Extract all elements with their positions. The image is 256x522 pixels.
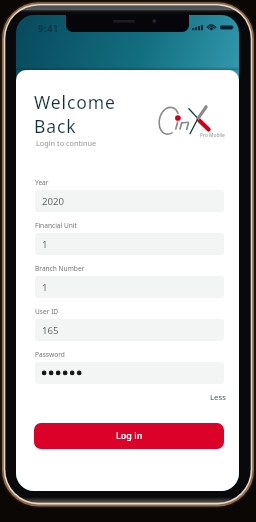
staticText: 1 bbox=[42, 238, 48, 251]
staticText: Welcome Back bbox=[34, 90, 116, 138]
button[interactable]: Password bbox=[35, 362, 224, 384]
button[interactable]: Log in bbox=[34, 423, 224, 449]
staticText: Year bbox=[35, 178, 49, 187]
staticText: 9:41 bbox=[38, 23, 60, 35]
staticText: Log in bbox=[116, 429, 143, 441]
staticText: Pro Mobile bbox=[200, 132, 225, 139]
button[interactable]: 1 bbox=[35, 276, 224, 298]
staticText: 1 bbox=[42, 281, 48, 294]
button[interactable]: 2020 bbox=[35, 190, 224, 212]
staticText: 165 bbox=[42, 324, 59, 337]
other: CinX Pro Mobile logo bbox=[156, 102, 239, 138]
button[interactable]: 1 bbox=[35, 233, 224, 255]
staticText: User ID bbox=[35, 307, 59, 316]
staticText: Less bbox=[210, 392, 226, 402]
button[interactable]: Less bbox=[202, 390, 234, 404]
staticText: Login to continue bbox=[36, 138, 97, 148]
staticText: Branch Number bbox=[35, 264, 85, 273]
staticText: 2020 bbox=[42, 195, 65, 208]
button[interactable]: 165 bbox=[35, 319, 224, 341]
staticText: Financial Unit bbox=[35, 221, 77, 230]
staticText: Password bbox=[35, 350, 65, 359]
other: Signal, Wi-Fi and battery status bbox=[190, 22, 236, 33]
